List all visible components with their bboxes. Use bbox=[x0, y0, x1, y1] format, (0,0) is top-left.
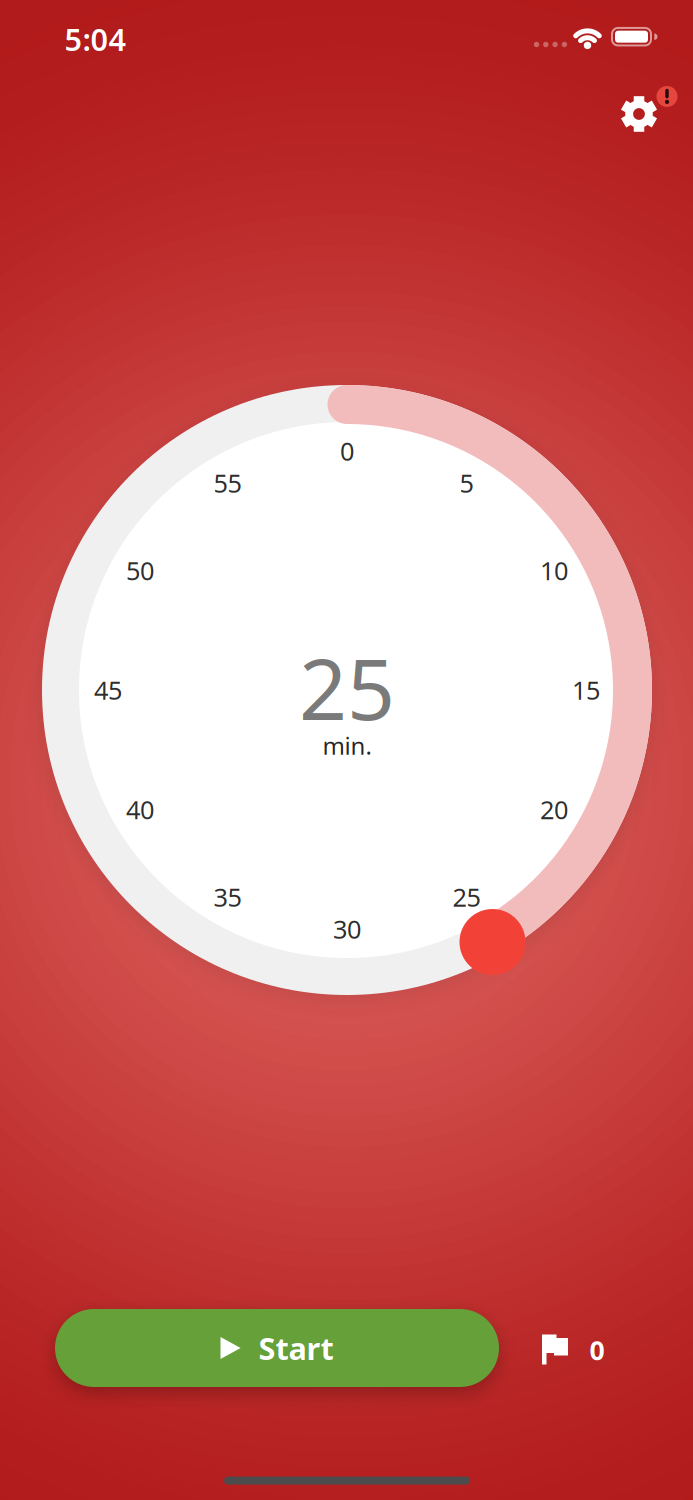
button[interactable]: Pomodoro count bbox=[525, 1319, 615, 1379]
staticText: 0 bbox=[340, 434, 354, 468]
staticText: 35 bbox=[213, 880, 241, 914]
staticText: min. bbox=[322, 730, 371, 761]
staticText: 55 bbox=[213, 466, 241, 500]
staticText: 25 bbox=[299, 632, 395, 743]
staticText: 20 bbox=[540, 793, 568, 826]
staticText: 5:04 bbox=[64, 19, 126, 59]
staticText: 0 bbox=[589, 1332, 604, 1367]
staticText: 40 bbox=[126, 793, 154, 826]
staticText: 15 bbox=[572, 673, 600, 707]
button[interactable]: Start bbox=[55, 1309, 499, 1387]
staticText: 5 bbox=[459, 466, 473, 500]
staticText: 45 bbox=[94, 673, 122, 707]
staticText: 50 bbox=[126, 554, 154, 587]
staticText: 10 bbox=[540, 554, 568, 587]
staticText: Start bbox=[258, 1328, 333, 1368]
staticText: 25 bbox=[452, 880, 480, 914]
staticText: 30 bbox=[333, 912, 361, 946]
button[interactable]: Settings bbox=[606, 65, 686, 145]
